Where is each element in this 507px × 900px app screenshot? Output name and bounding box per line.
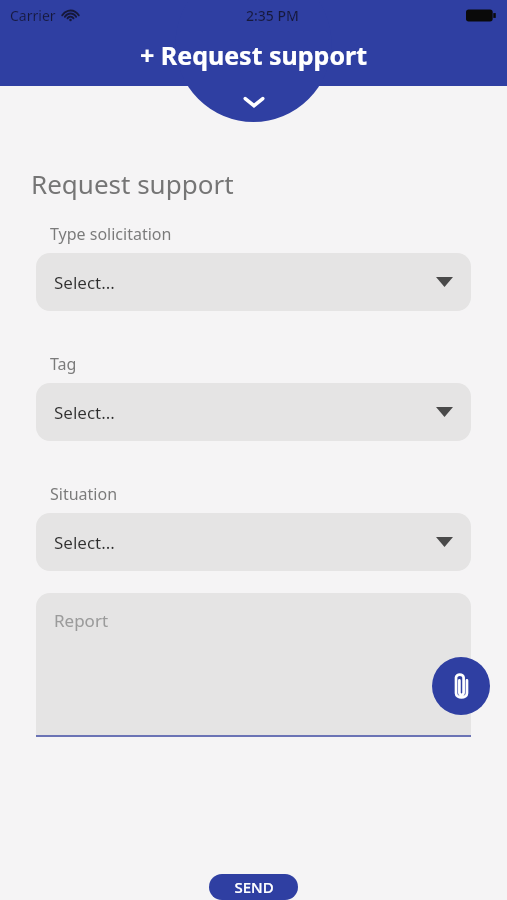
- staticText: Carrier: [10, 6, 56, 25]
- button[interactable]: + Request support: [0, 34, 507, 76]
- staticText: Request support: [31, 166, 234, 201]
- staticText: SEND: [234, 877, 274, 897]
- staticText: Select...: [54, 531, 115, 554]
- staticText: 2:35 PM: [246, 6, 299, 25]
- button[interactable]: SEND: [209, 874, 298, 900]
- staticText: + Request support: [140, 38, 368, 72]
- staticText: Report: [54, 609, 109, 632]
- staticText: Type solicitation: [50, 223, 172, 245]
- button[interactable]: Select...: [36, 253, 471, 311]
- button[interactable]: Select...: [36, 383, 471, 441]
- button[interactable]: Report: [36, 593, 471, 735]
- button[interactable]: Expand header: [232, 88, 276, 116]
- staticText: Select...: [54, 401, 115, 424]
- staticText: Situation: [50, 483, 118, 505]
- button[interactable]: Attach file: [432, 657, 490, 715]
- button[interactable]: Select...: [36, 513, 471, 571]
- staticText: Tag: [50, 353, 77, 375]
- staticText: Select...: [54, 271, 115, 294]
